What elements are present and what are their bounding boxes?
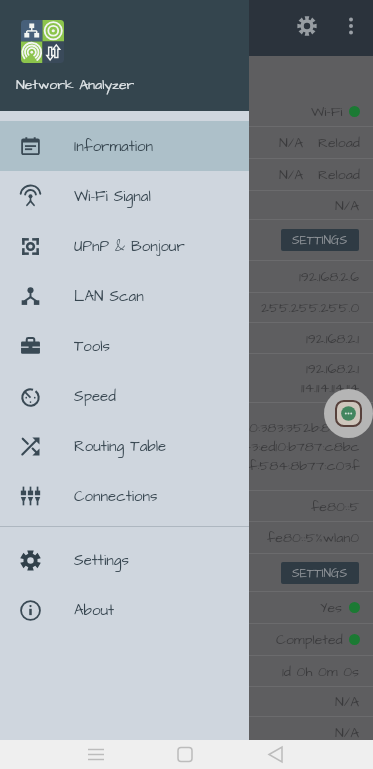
button[interactable]: Information bbox=[0, 121, 249, 171]
staticText: 114.114.114.114 bbox=[301, 378, 360, 397]
staticText: SETTINGS bbox=[292, 232, 348, 249]
staticText: Wi-Fi bbox=[311, 102, 343, 121]
staticText: SETTINGS bbox=[292, 565, 348, 582]
staticText: Routing Table bbox=[74, 436, 167, 457]
staticText: 00f:584:8b77:c03f bbox=[231, 456, 360, 475]
staticText: 255.255.255.0 bbox=[261, 298, 360, 317]
staticText: Speed bbox=[74, 386, 116, 407]
staticText: bd0:383:352b:8455 bbox=[234, 418, 360, 437]
staticText: N/A bbox=[335, 692, 360, 711]
staticText: Network Analyzer bbox=[16, 75, 135, 94]
staticText: 743:ed10:b787:c8bc bbox=[233, 437, 360, 456]
staticText: LAN Scan bbox=[74, 286, 144, 307]
button[interactable]: Tools bbox=[0, 321, 249, 371]
button[interactable]: More options bbox=[327, 2, 373, 50]
button[interactable]: Scan bbox=[324, 389, 373, 438]
staticText: Reload bbox=[318, 133, 360, 152]
button[interactable]: SETTINGS bbox=[281, 562, 359, 584]
staticText: Yes bbox=[320, 598, 343, 617]
staticText: 1d 0h 0m 0s bbox=[282, 662, 360, 681]
button[interactable]: About bbox=[0, 585, 249, 635]
staticText: N/A bbox=[335, 196, 360, 215]
button[interactable]: Settings bbox=[283, 2, 331, 50]
button[interactable]: Connections bbox=[0, 471, 249, 521]
staticText: About bbox=[74, 600, 115, 621]
staticText: fe80::5%wlan0 bbox=[267, 528, 360, 547]
staticText: Connections bbox=[74, 486, 158, 507]
staticText: Settings bbox=[74, 550, 129, 571]
button[interactable]: Wi-Fi Signal bbox=[0, 171, 249, 221]
staticText: Reload bbox=[318, 165, 360, 184]
staticText: 192.168.2.6 bbox=[299, 267, 360, 286]
staticText: N/A bbox=[335, 723, 360, 742]
staticText: 192.168.2.1 bbox=[306, 329, 360, 348]
staticText: Wi-Fi Signal bbox=[74, 186, 151, 207]
button[interactable]: UPnP & Bonjour bbox=[0, 221, 249, 271]
staticText: 192.168.2.1 bbox=[306, 359, 360, 378]
button[interactable]: LAN Scan bbox=[0, 271, 249, 321]
staticText: UPnP & Bonjour bbox=[74, 236, 185, 257]
staticText: fe80::5 bbox=[311, 497, 360, 516]
staticText: Tools bbox=[74, 336, 111, 357]
button[interactable]: SETTINGS bbox=[281, 229, 359, 251]
staticText: Information bbox=[74, 136, 153, 157]
button[interactable]: Speed bbox=[0, 371, 249, 421]
staticText: Completed bbox=[276, 630, 343, 649]
staticText: N/A bbox=[279, 165, 304, 184]
button[interactable]: Routing Table bbox=[0, 421, 249, 471]
button[interactable]: Settings bbox=[0, 535, 249, 585]
staticText: N/A bbox=[279, 133, 304, 152]
